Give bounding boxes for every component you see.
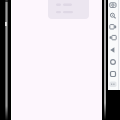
button[interactable] <box>108 0 120 11</box>
button[interactable] <box>48 0 89 19</box>
button[interactable] <box>108 55 120 66</box>
button[interactable] <box>108 33 120 44</box>
button[interactable] <box>108 66 120 77</box>
button[interactable] <box>108 77 120 88</box>
button[interactable] <box>108 22 120 33</box>
button[interactable] <box>108 44 120 55</box>
button[interactable] <box>108 11 120 22</box>
